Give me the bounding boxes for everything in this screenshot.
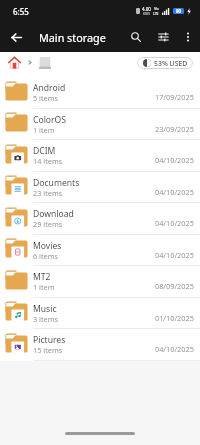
button[interactable]: Android [0,77,200,109]
button[interactable]: 53% USED [137,57,193,69]
staticText: 04/10/2025 [155,344,194,354]
staticText: 08/09/2025 [155,281,194,291]
staticText: KB/S [143,12,150,16]
button[interactable]: Home [7,55,22,70]
button[interactable]: ColorOS [0,109,200,140]
button[interactable]: More options [176,25,200,49]
staticText: 6 items [33,251,59,261]
staticText: 23 items [33,188,63,198]
staticText: 5 items [33,93,59,103]
staticText: 3 items [33,314,59,324]
button[interactable]: Music [0,298,200,329]
staticText: 14 items [33,156,63,166]
staticText: 15 items [33,345,63,355]
button[interactable]: Sort and filter [151,25,175,49]
button[interactable]: MT2 [0,266,200,298]
button[interactable]: Download [0,203,200,235]
button[interactable]: Movies [0,235,200,266]
staticText: LTE [153,11,159,16]
staticText: 04/10/2025 [155,218,194,228]
staticText: 4.00 [142,6,151,12]
staticText: 6:55 [13,6,29,17]
staticText: DCIM [33,145,56,157]
staticText: 17/09/2025 [155,92,194,102]
staticText: Movies [33,240,62,252]
staticText: 53% USED [154,59,188,68]
staticText: Documents [33,177,80,189]
staticText: Download [33,208,74,220]
staticText: 29 items [33,219,63,229]
staticText: 23/09/2025 [155,124,194,134]
staticText: 1 item [33,125,55,135]
staticText: MT2 [33,271,51,283]
staticText: 04/10/2025 [155,187,194,197]
button[interactable]: Pictures [0,329,200,361]
staticText: 04/10/2025 [155,250,194,260]
staticText: 04/10/2025 [155,155,194,165]
staticText: Vo [154,6,159,11]
button[interactable]: Back [5,26,27,48]
button[interactable]: Search [124,25,148,49]
button[interactable]: DCIM [0,140,200,172]
staticText: Main storage [39,30,106,45]
button[interactable]: Documents [0,172,200,203]
staticText: 01/10/2025 [155,313,194,323]
staticText: Android [33,82,66,94]
staticText: 90 [176,8,182,14]
staticText: 1 item [33,282,55,292]
staticText: Pictures [33,334,66,346]
staticText: Music [33,303,57,315]
button[interactable]: Main storage [38,56,52,70]
staticText: ColorOS [33,114,67,126]
